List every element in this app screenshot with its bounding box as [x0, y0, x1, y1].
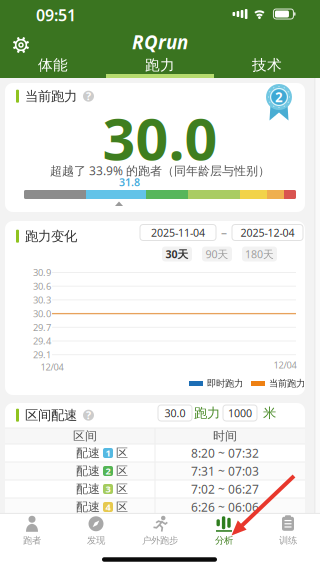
- staticText: ?: [86, 89, 91, 103]
- staticText: 区: [116, 464, 128, 478]
- staticText: 7:02 ~ 06:27: [191, 481, 259, 497]
- button[interactable]: 分析: [192, 514, 256, 548]
- staticText: 米: [263, 405, 276, 421]
- button[interactable]: 2025-12-04: [232, 224, 303, 240]
- button[interactable]: 90天: [202, 246, 232, 261]
- staticText: 技术: [252, 56, 282, 74]
- staticText: RQrun: [132, 30, 188, 54]
- staticText: 30.0: [164, 406, 185, 420]
- staticText: 4: [105, 501, 110, 513]
- staticText: 1000: [228, 406, 252, 420]
- staticText: 超越了 33.9% 的跑者（同年龄层与性别）: [50, 162, 270, 178]
- button[interactable]: 训练: [256, 514, 320, 548]
- staticText: 180天: [245, 247, 274, 261]
- staticText: 2025-11-04: [151, 225, 205, 240]
- staticText: 2025-12-04: [240, 225, 294, 240]
- staticText: 12/04: [40, 361, 63, 373]
- staticText: 8:20 ~ 07:32: [191, 445, 259, 461]
- button[interactable]: Settings: [12, 36, 30, 54]
- button[interactable]: 30.0: [158, 405, 192, 421]
- staticText: 30天: [165, 247, 188, 261]
- staticText: 29.4: [33, 335, 51, 347]
- staticText: 发现: [87, 535, 105, 546]
- staticText: 区间: [73, 429, 97, 443]
- staticText: ?: [86, 408, 91, 422]
- staticText: 分析: [215, 535, 233, 546]
- staticText: 3: [105, 483, 110, 495]
- staticText: 6:26 ~ 06:06: [191, 499, 259, 515]
- staticText: 区间配速: [25, 407, 77, 423]
- staticText: 7:31 ~ 07:03: [191, 463, 259, 479]
- staticText: 当前跑力: [269, 378, 305, 389]
- staticText: 31.8: [119, 175, 140, 189]
- staticText: 29.7: [33, 321, 51, 333]
- button[interactable]: Help: [83, 91, 94, 102]
- button[interactable]: 体能: [0, 54, 106, 76]
- staticText: 30.3: [33, 294, 51, 306]
- staticText: 配速: [76, 500, 100, 514]
- button[interactable]: 2025-11-04: [140, 224, 216, 240]
- staticText: 训练: [279, 535, 297, 546]
- staticText: 1: [105, 447, 110, 459]
- button[interactable]: 180天: [242, 246, 277, 261]
- staticText: 配速: [76, 464, 100, 478]
- staticText: 体能: [38, 56, 68, 74]
- button[interactable]: 1000: [223, 405, 257, 421]
- staticText: 30.6: [33, 280, 51, 292]
- button[interactable]: 跑力: [107, 54, 213, 76]
- staticText: 区: [116, 446, 128, 460]
- staticText: 30.9: [33, 266, 51, 279]
- staticText: 跑力: [194, 405, 220, 421]
- staticText: 12/04: [273, 359, 296, 371]
- button[interactable]: 发现: [64, 514, 128, 548]
- staticText: 区: [116, 500, 128, 514]
- staticText: –: [221, 224, 227, 240]
- staticText: 户外跑步: [142, 535, 178, 546]
- staticText: 跑力变化: [25, 228, 77, 244]
- staticText: 配速: [76, 482, 100, 496]
- staticText: 跑者: [23, 535, 41, 546]
- staticText: 90天: [205, 247, 228, 261]
- staticText: 即时跑力: [207, 378, 243, 389]
- button[interactable]: 户外跑步: [128, 514, 192, 548]
- staticText: 09:51: [36, 4, 76, 26]
- button[interactable]: Help: [83, 410, 94, 421]
- staticText: 29.1: [33, 348, 51, 361]
- staticText: 30.0: [102, 100, 217, 176]
- button[interactable]: 技术: [214, 54, 320, 76]
- button[interactable]: 30天: [162, 246, 192, 261]
- staticText: 配速: [76, 446, 100, 460]
- staticText: 2: [275, 88, 283, 106]
- staticText: 30.0: [33, 307, 51, 320]
- button[interactable]: 跑者: [0, 514, 64, 548]
- staticText: 2: [105, 465, 110, 477]
- staticText: 当前跑力: [25, 88, 77, 104]
- staticText: 跑力: [145, 56, 175, 74]
- staticText: 时间: [213, 429, 237, 443]
- staticText: 区: [116, 482, 128, 496]
